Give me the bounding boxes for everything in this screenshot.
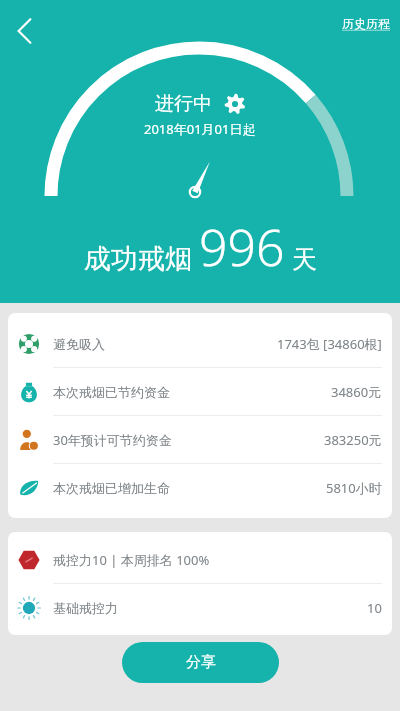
button[interactable]: 历史历程 xyxy=(340,14,392,33)
staticText: 分享 xyxy=(186,653,216,672)
staticText: 成功戒烟 xyxy=(84,242,192,276)
button[interactable]: 戒控力10 | 本周排名 100% xyxy=(8,536,392,584)
staticText: 2018年01月01日起 xyxy=(144,120,256,138)
staticText: 1743包 [34860根] xyxy=(277,335,382,353)
button[interactable]: 本次戒烟已节约资金 xyxy=(8,368,392,416)
staticText: 避免吸入 xyxy=(53,336,105,352)
button[interactable]: 分享 xyxy=(122,642,279,683)
staticText: 进行中 xyxy=(155,92,212,116)
staticText: 30年预计可节约资金 xyxy=(53,431,172,449)
staticText: 本次戒烟已增加生命 xyxy=(53,480,170,496)
button[interactable]: 避免吸入 xyxy=(8,320,392,368)
staticText: 383250元 xyxy=(324,431,382,449)
staticText: 历史历程 xyxy=(342,16,390,31)
button[interactable]: Settings xyxy=(224,93,246,115)
staticText: 34860元 xyxy=(331,383,382,401)
button[interactable]: 基础戒控力 xyxy=(8,584,392,631)
staticText: 戒控力10 | 本周排名 100% xyxy=(53,551,210,569)
staticText: 10 xyxy=(367,599,382,617)
staticText: 996 xyxy=(199,213,285,281)
staticText: 基础戒控力 xyxy=(53,600,118,616)
button[interactable]: 本次戒烟已增加生命 xyxy=(8,464,392,511)
staticText: 本次戒烟已节约资金 xyxy=(53,384,170,400)
button[interactable]: 30年预计可节约资金 xyxy=(8,416,392,464)
button[interactable]: Back xyxy=(6,10,48,52)
staticText: 5810小时 xyxy=(326,479,382,497)
staticText: 天 xyxy=(292,244,317,275)
